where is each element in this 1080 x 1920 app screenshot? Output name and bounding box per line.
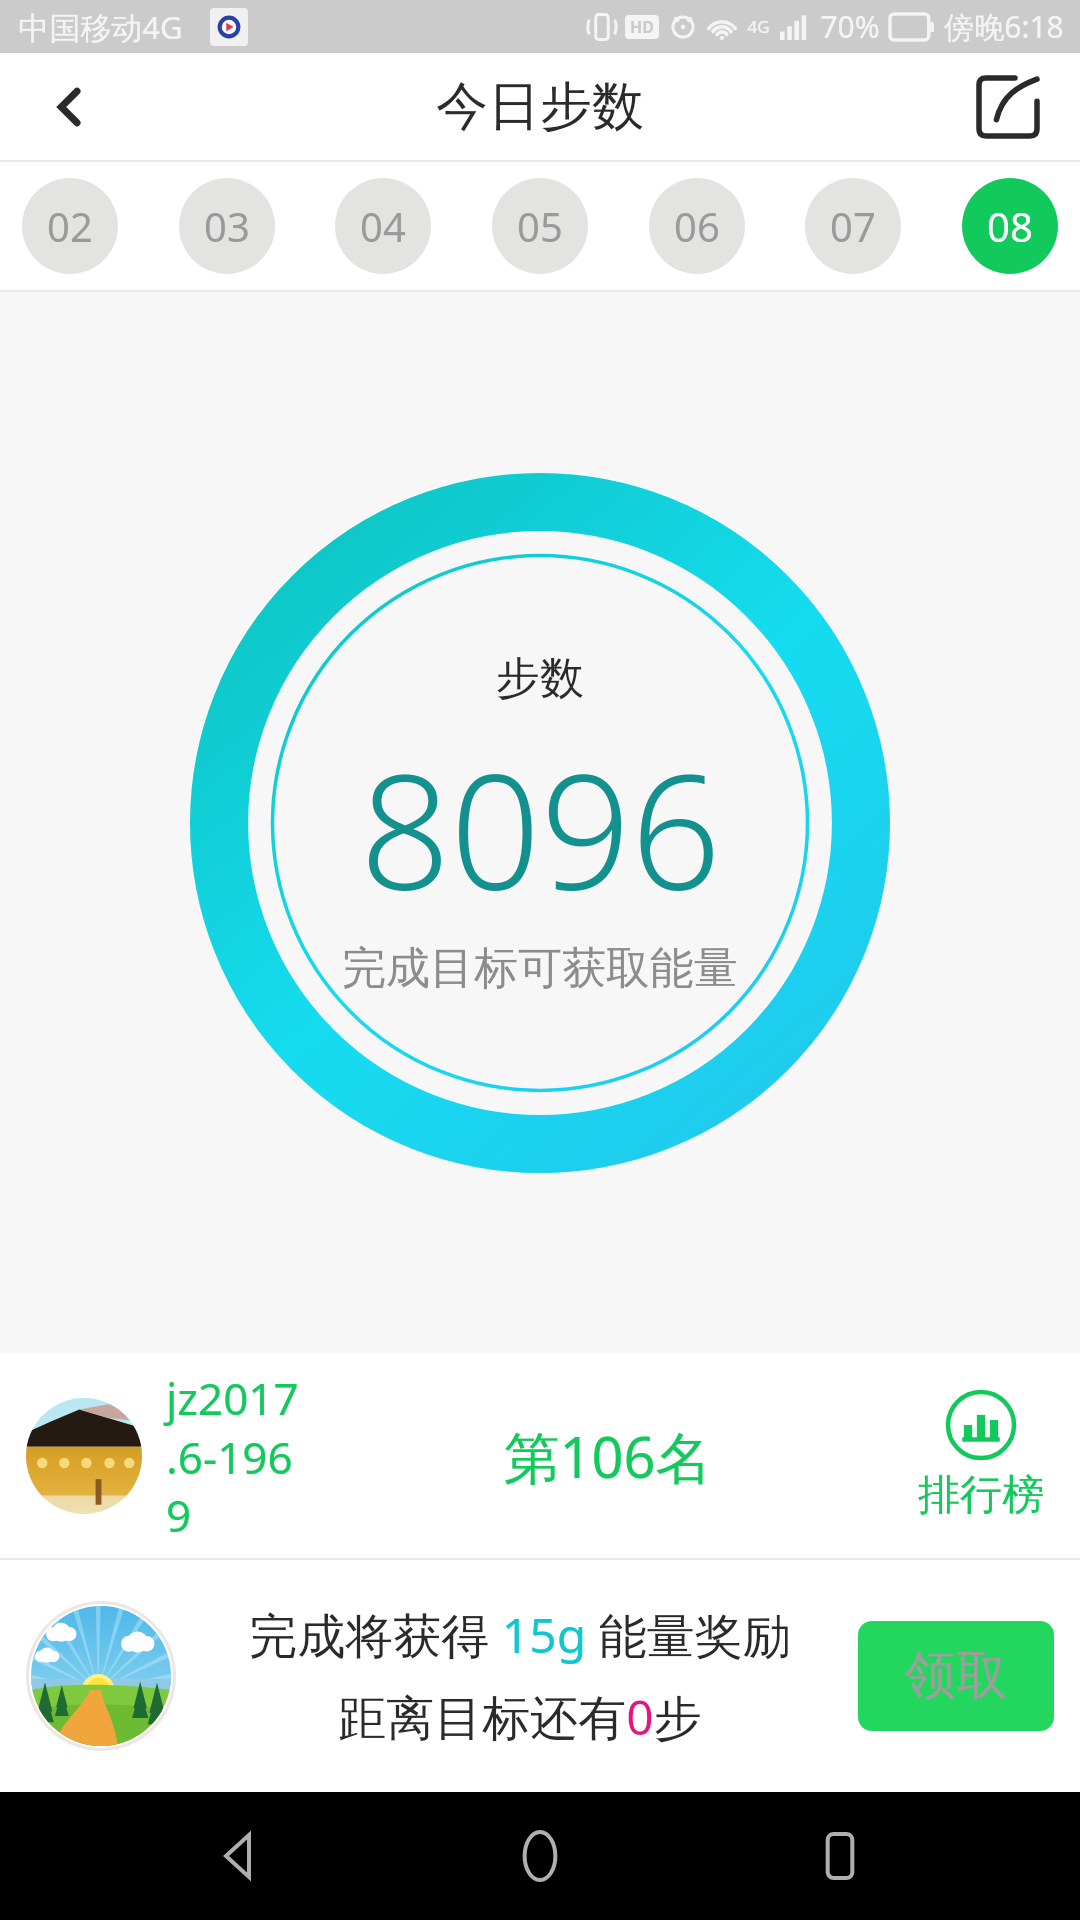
staticText: 完成将获得 15g 能量奖励 [249, 1602, 791, 1668]
button[interactable]: 排行榜 [908, 1389, 1054, 1522]
button[interactable]: jz2017.6-1969 [0, 1353, 1080, 1558]
staticText: 02 [47, 199, 93, 253]
staticText: 距离目标还有0步 [338, 1684, 702, 1750]
button[interactable]: 03 [179, 178, 275, 274]
staticText: 03 [204, 199, 250, 253]
button[interactable]: Share [970, 69, 1046, 145]
staticText: 08 [987, 199, 1033, 253]
staticText: 4G [747, 15, 770, 38]
button[interactable]: Recent apps [780, 1796, 900, 1916]
staticText: 70% [820, 6, 880, 47]
staticText: HD [630, 16, 654, 38]
staticText: 领取 [904, 1643, 1008, 1709]
button[interactable]: Home [480, 1796, 600, 1916]
staticText: jz2017.6-1969 [166, 1368, 306, 1544]
button[interactable]: 08 [962, 178, 1058, 274]
staticText: 06 [674, 199, 720, 253]
button[interactable]: 领取 [858, 1621, 1054, 1731]
staticText: 完成目标可获取能量 [342, 941, 738, 996]
staticText: 05 [517, 199, 563, 253]
button[interactable]: 04 [335, 178, 431, 274]
staticText: 04 [360, 199, 406, 253]
staticText: 排行榜 [918, 1469, 1044, 1522]
button[interactable]: 05 [492, 178, 588, 274]
staticText: 今日步数 [436, 74, 644, 140]
staticText: 傍晚6:18 [944, 6, 1064, 47]
staticText: 步数 [496, 651, 584, 706]
staticText: 07 [830, 199, 876, 253]
button[interactable]: 02 [22, 178, 118, 274]
button[interactable]: 07 [805, 178, 901, 274]
button[interactable]: Back [180, 1796, 300, 1916]
staticText: 中国移动4G [18, 6, 183, 48]
button[interactable]: 06 [649, 178, 745, 274]
button[interactable]: Back [34, 71, 106, 143]
staticText: 第106名 [503, 1418, 712, 1494]
staticText: 8096 [360, 720, 721, 935]
